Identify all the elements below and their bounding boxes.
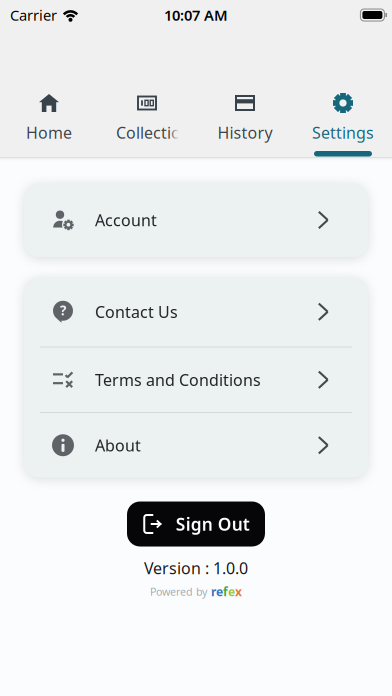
- staticText: e: [228, 584, 235, 600]
- button[interactable]: Sign Out: [127, 501, 265, 546]
- staticText: Powered by: [150, 585, 207, 599]
- button[interactable]: History: [196, 91, 294, 157]
- staticText: Collection: [116, 122, 191, 143]
- staticText: x: [235, 584, 242, 600]
- button[interactable]: Collection: [98, 91, 196, 157]
- button[interactable]: Home: [0, 91, 98, 157]
- staticText: Sign Out: [176, 512, 250, 535]
- button[interactable]: About: [24, 413, 368, 477]
- button[interactable]: ?: [24, 277, 368, 346]
- staticText: Contact Us: [95, 301, 178, 322]
- staticText: About: [95, 435, 141, 456]
- staticText: Terms and Conditions: [95, 369, 261, 390]
- staticText: History: [217, 122, 272, 143]
- staticText: 10:07 AM: [164, 5, 228, 25]
- staticText: Version : 1.0.0: [144, 557, 248, 579]
- button[interactable]: Terms and Conditions: [24, 347, 368, 412]
- staticText: Home: [26, 122, 72, 143]
- button[interactable]: Account: [24, 183, 368, 257]
- staticText: f: [223, 584, 228, 600]
- staticText: Carrier: [10, 5, 57, 25]
- staticText: Settings: [312, 122, 374, 143]
- staticText: re: [211, 584, 223, 600]
- staticText: Account: [95, 209, 157, 231]
- button[interactable]: Settings: [294, 91, 392, 157]
- staticText: ?: [60, 301, 66, 319]
